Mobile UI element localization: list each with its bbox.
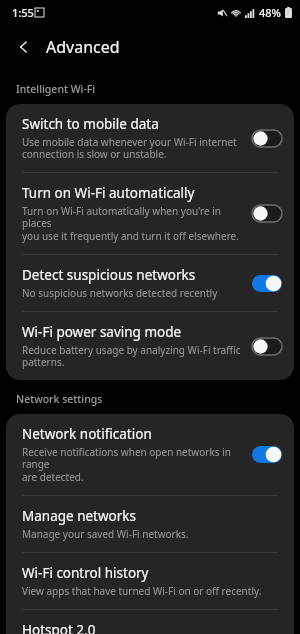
staticText: Hotspot 2.0 [22, 621, 96, 634]
staticText: Use mobile data whenever your Wi-Fi inte… [22, 135, 237, 161]
staticText: Receive notifications when open networks… [22, 445, 242, 484]
staticText: Turn on Wi-Fi automatically [22, 184, 195, 202]
button[interactable]: Manage networks [6, 496, 294, 552]
staticText: Wi-Fi control history [22, 564, 149, 582]
button[interactable]: Turn on Wi-Fi automatically [6, 173, 294, 254]
staticText: Switch to mobile data [22, 115, 159, 133]
button[interactable]: Wi-Fi control history [6, 553, 294, 609]
button[interactable]: Switch to mobile data [6, 104, 294, 172]
staticText: Manage your saved Wi-Fi networks. [22, 527, 189, 541]
button[interactable]: Wi-Fi power saving mode [6, 312, 294, 380]
staticText: Network settings [16, 392, 103, 406]
button[interactable]: Network notification [6, 414, 294, 495]
button[interactable]: Detect suspicious networks [6, 255, 294, 311]
staticText: Intelligent Wi-Fi [16, 82, 96, 96]
staticText: Detect suspicious networks [22, 266, 196, 284]
staticText: Manage networks [22, 507, 137, 525]
staticText: Wi-Fi power saving mode [22, 323, 182, 341]
staticText: 1:55 [12, 5, 34, 20]
button[interactable]: Back [8, 31, 40, 63]
staticText: 48% [259, 5, 281, 20]
staticText: Advanced [46, 36, 120, 58]
staticText: Turn on Wi-Fi automatically when you're … [22, 204, 242, 243]
staticText: View apps that have turned Wi-Fi on or o… [22, 584, 262, 598]
button[interactable]: Hotspot 2.0 [6, 610, 294, 634]
staticText: No suspicious networks detected recently [22, 286, 218, 300]
staticText: Network notification [22, 425, 152, 443]
staticText: Reduce battery usage by analyzing Wi-Fi … [22, 343, 241, 369]
